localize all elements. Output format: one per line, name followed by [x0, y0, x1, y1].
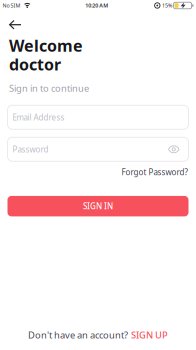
- button[interactable]: SIGN IN: [7, 196, 188, 216]
- staticText: SIGN IN: [83, 201, 113, 211]
- button[interactable]: SIGN UP: [128, 329, 168, 341]
- button[interactable]: Back: [0, 11, 21, 35]
- staticText: No SIM: [2, 2, 20, 9]
- staticText: Password: [12, 144, 48, 155]
- staticText: 15%: [162, 2, 172, 9]
- button[interactable]: Show password: [168, 146, 179, 153]
- staticText: Email Address: [12, 112, 64, 123]
- staticText: Forgot Password?: [121, 167, 187, 177]
- staticText: Don't have an account?: [28, 329, 128, 341]
- staticText: doctor: [9, 54, 61, 75]
- button[interactable]: Forgot Password?: [121, 167, 187, 177]
- staticText: SIGN UP: [131, 329, 168, 341]
- staticText: Welcome: [9, 35, 83, 56]
- staticText: Sign in to continue: [9, 82, 89, 94]
- staticText: 10:20 AM: [85, 2, 108, 9]
